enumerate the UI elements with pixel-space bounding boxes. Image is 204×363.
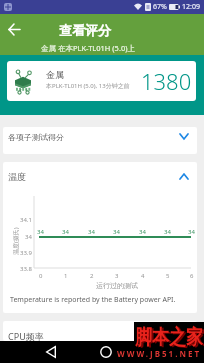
staticText: 34	[188, 228, 195, 236]
staticText: 脚本之家	[137, 326, 204, 351]
button[interactable]	[40, 344, 62, 360]
staticText: 金属	[46, 69, 64, 80]
staticText: 34	[164, 228, 171, 236]
staticText: 运行过的测试	[96, 281, 138, 290]
staticText: 查看评分	[59, 22, 111, 38]
staticText: 1380	[141, 66, 192, 96]
staticText: 34	[139, 228, 146, 236]
staticText: 67%	[153, 2, 167, 12]
staticText: 34	[113, 228, 120, 236]
staticText: 3	[115, 272, 119, 280]
staticText: Temperature is reported by the Battery p…	[10, 295, 176, 305]
staticText: 2	[90, 272, 94, 280]
staticText: 温度(摄氏)	[12, 227, 20, 255]
staticText: 4	[141, 272, 145, 280]
button[interactable]: 金属	[7, 61, 196, 101]
staticText: 12:09	[182, 2, 200, 12]
staticText: 0	[39, 272, 43, 280]
staticText: 本PLK-TL01H (5.0), 13分钟之前	[46, 82, 130, 90]
staticText: 金属 在本PLK-TL01H (5.0)上	[41, 43, 135, 53]
staticText: 各项子测试得分	[8, 132, 64, 142]
staticText: 34	[88, 228, 95, 236]
button[interactable]	[95, 344, 117, 360]
staticText: 33.8	[20, 265, 32, 273]
staticText: 1	[64, 272, 68, 280]
button[interactable]	[2, 17, 26, 41]
staticText: 6	[190, 272, 194, 280]
staticText: 脚本之家	[135, 325, 203, 350]
button[interactable]: CPU频率	[3, 321, 197, 341]
staticText: 5	[166, 272, 170, 280]
staticText: 34	[62, 228, 69, 236]
staticText: 温度	[8, 171, 26, 182]
staticText: 34.1	[20, 216, 32, 224]
button[interactable]: 各项子测试得分	[3, 127, 197, 154]
button[interactable]: 温度	[8, 162, 189, 190]
staticText: CPU频率	[8, 330, 44, 341]
staticText: 33.9	[20, 249, 32, 257]
staticText: WWW.JB51.NET	[117, 348, 202, 359]
button[interactable]	[146, 344, 168, 360]
staticText: 34	[37, 228, 44, 236]
staticText: 34	[25, 233, 32, 241]
